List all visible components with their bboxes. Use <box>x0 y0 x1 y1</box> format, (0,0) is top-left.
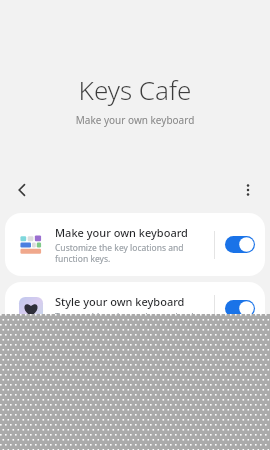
button[interactable]: Style your own keyboard <box>5 282 265 335</box>
staticText: Make your own keyboard <box>55 225 188 240</box>
staticText: Try out with various colors and styles. <box>55 311 205 323</box>
staticText: Style your own keyboard <box>55 294 185 309</box>
button[interactable]: Back <box>8 176 36 204</box>
button[interactable]: Toggle <box>225 300 255 317</box>
button[interactable]: More options <box>234 176 262 204</box>
staticText: Make your own keyboard <box>0 113 270 127</box>
staticText: Customize the key locations and function… <box>55 242 206 264</box>
button[interactable]: Toggle <box>225 236 255 253</box>
button[interactable]: Make your own keyboard <box>5 213 265 276</box>
staticText: Keys Cafe <box>0 72 270 107</box>
